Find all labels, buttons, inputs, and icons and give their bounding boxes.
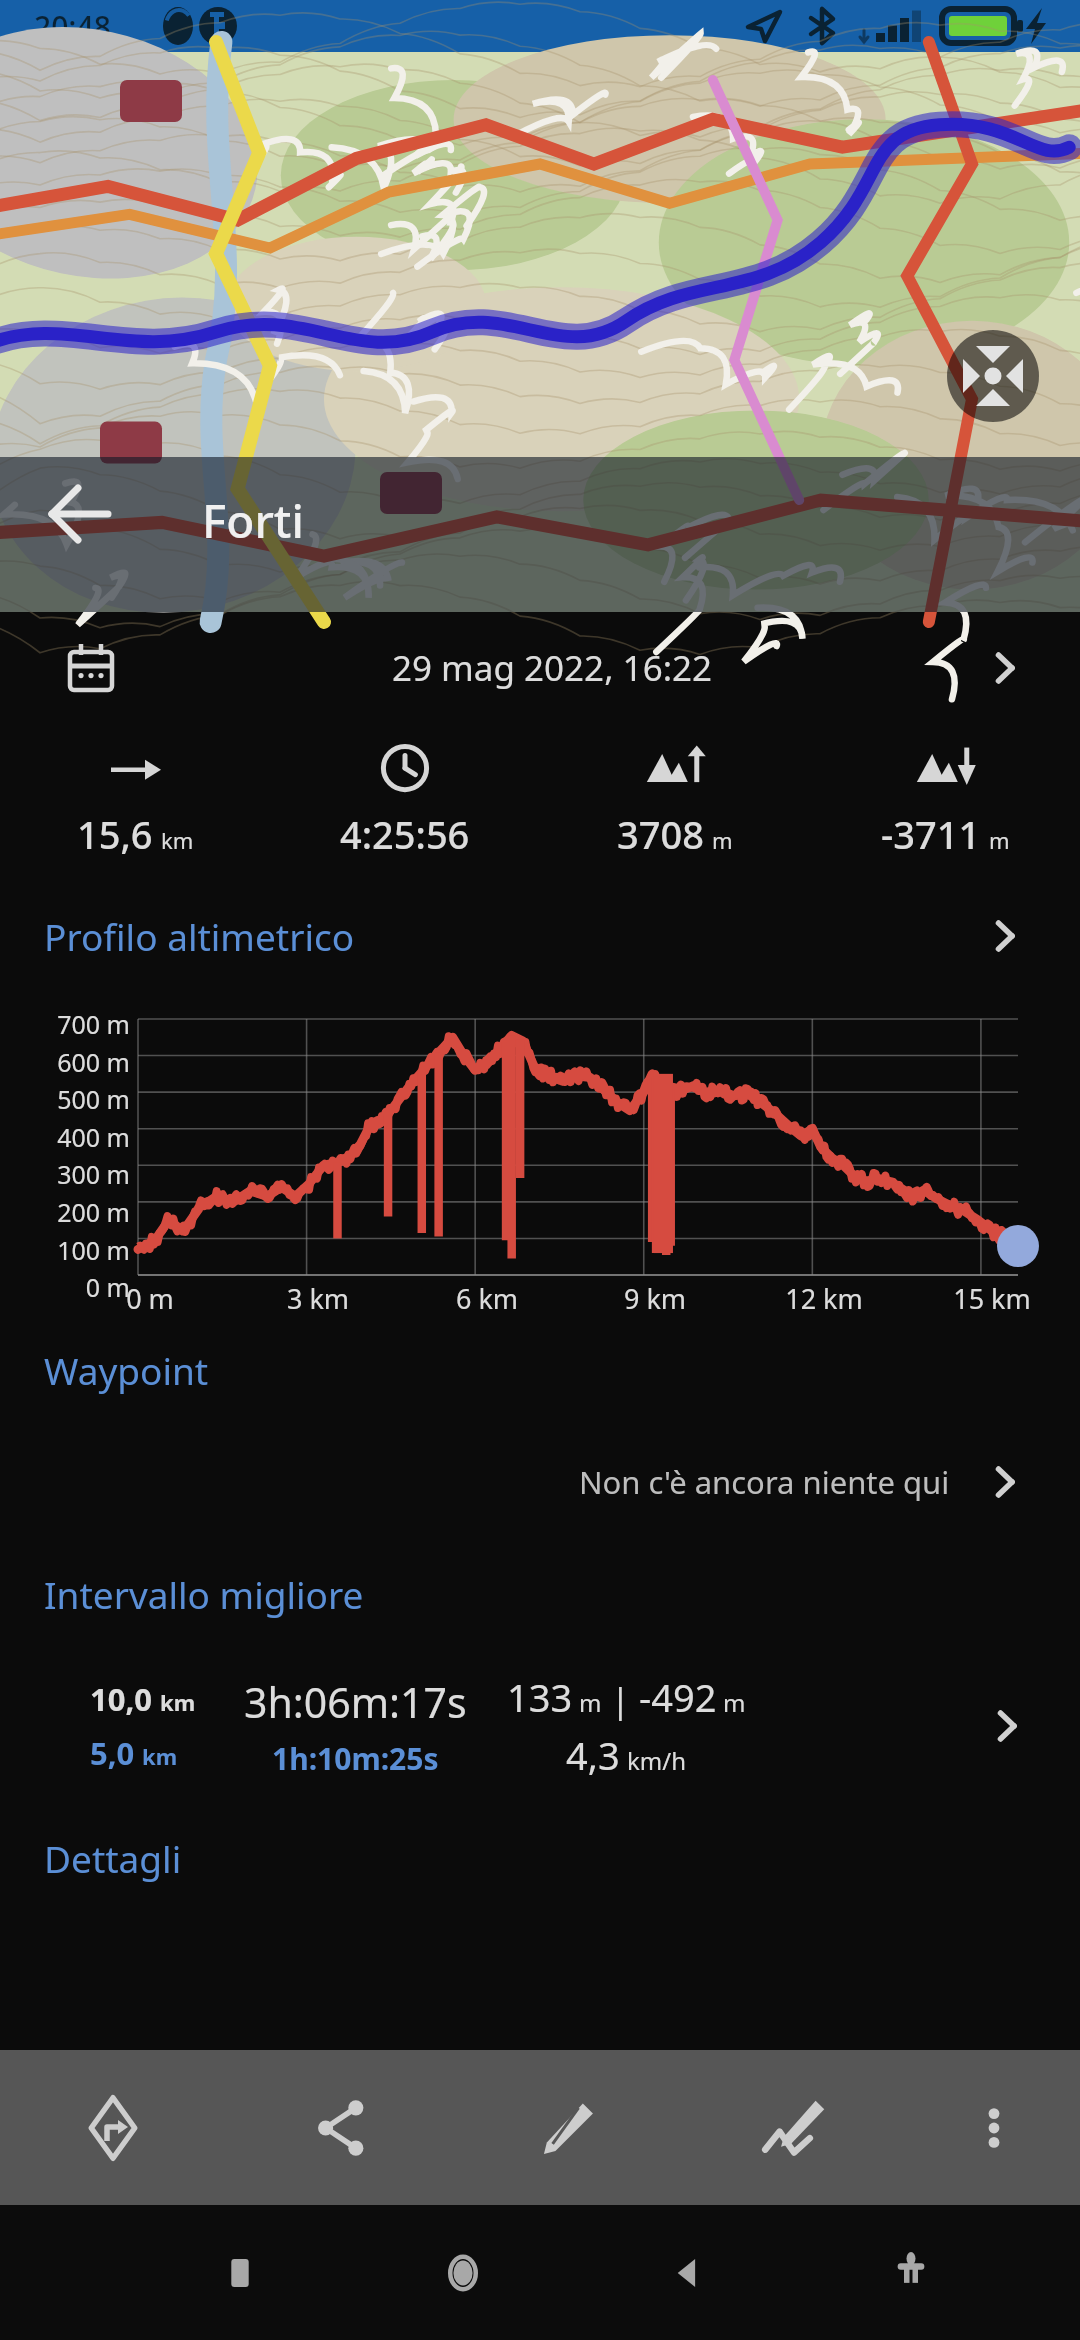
staticText: km bbox=[160, 1687, 196, 1717]
staticText: 100 m bbox=[10, 1233, 130, 1267]
staticText: 9 km bbox=[585, 1280, 725, 1317]
staticText: Dettagli bbox=[44, 1833, 182, 1883]
button[interactable]: Back bbox=[632, 2218, 742, 2328]
staticText: 300 m bbox=[10, 1157, 130, 1191]
staticText: | bbox=[611, 1677, 630, 1723]
staticText: Intervallo migliore bbox=[44, 1569, 364, 1619]
staticText: km/h bbox=[627, 1744, 687, 1777]
button[interactable]: 29 mag 2022, 16:22 bbox=[0, 612, 1080, 724]
staticText: m bbox=[712, 825, 733, 855]
staticText: 700 m bbox=[10, 1007, 130, 1041]
button[interactable]: Dettagli bbox=[0, 1806, 1080, 1910]
staticText: 3 km bbox=[248, 1280, 388, 1317]
staticText: 0 m bbox=[80, 1280, 220, 1317]
staticText: km bbox=[142, 1741, 178, 1771]
button[interactable]: Intervallo migliore bbox=[0, 1542, 1080, 1646]
button[interactable]: More options bbox=[907, 2050, 1080, 2205]
staticText: m bbox=[579, 1686, 602, 1719]
staticText: 500 m bbox=[10, 1082, 130, 1116]
staticText: 5,0 bbox=[90, 1732, 135, 1774]
staticText: 4:25:56 bbox=[340, 808, 470, 860]
button[interactable]: Home bbox=[408, 2218, 518, 2328]
staticText: -492 bbox=[639, 1671, 717, 1723]
staticText: m bbox=[989, 825, 1010, 855]
staticText: Profilo altimetrico bbox=[44, 911, 355, 961]
button[interactable]: Edit track bbox=[680, 2050, 907, 2205]
staticText: 20:48 bbox=[34, 6, 111, 47]
staticText: 1h:10m:25s bbox=[272, 1738, 439, 1779]
staticText: 10,0 bbox=[90, 1678, 153, 1720]
staticText: 200 m bbox=[10, 1195, 130, 1229]
staticText: 3708 bbox=[617, 808, 704, 860]
button[interactable]: Accessibility bbox=[856, 2218, 966, 2328]
button[interactable]: 10,0 bbox=[0, 1646, 1080, 1806]
staticText: 400 m bbox=[10, 1120, 130, 1154]
button[interactable]: Recents bbox=[185, 2218, 295, 2328]
staticText: 6 km bbox=[417, 1280, 557, 1317]
staticText: 0 m bbox=[10, 1270, 130, 1304]
button[interactable]: Profilo altimetrico bbox=[0, 884, 1080, 988]
button[interactable]: Directions bbox=[0, 2050, 226, 2205]
staticText: 133 bbox=[507, 1671, 573, 1723]
staticText: 600 m bbox=[10, 1045, 130, 1079]
staticText: Non c'è ancora niente qui bbox=[579, 1461, 950, 1503]
staticText: 3h:06m:17s bbox=[244, 1674, 467, 1730]
button[interactable]: Fit track to screen bbox=[947, 330, 1039, 422]
staticText: Forti bbox=[202, 489, 304, 552]
button[interactable]: Share bbox=[226, 2050, 453, 2205]
button[interactable]: Back bbox=[34, 468, 126, 560]
staticText: m bbox=[723, 1686, 746, 1719]
staticText: 4,3 bbox=[566, 1729, 620, 1781]
staticText: -3711 bbox=[881, 808, 981, 860]
staticText: km bbox=[161, 825, 194, 855]
staticText: 15 km bbox=[922, 1280, 1062, 1317]
button[interactable]: Waypoint bbox=[0, 1318, 1080, 1422]
staticText: 12 km bbox=[754, 1280, 894, 1317]
button[interactable]: Non c'è ancora niente qui bbox=[0, 1422, 1080, 1542]
staticText: Waypoint bbox=[44, 1345, 209, 1395]
staticText: 15,6 bbox=[77, 808, 153, 860]
button[interactable]: Edit bbox=[453, 2050, 680, 2205]
staticText: 29 mag 2022, 16:22 bbox=[120, 644, 984, 692]
